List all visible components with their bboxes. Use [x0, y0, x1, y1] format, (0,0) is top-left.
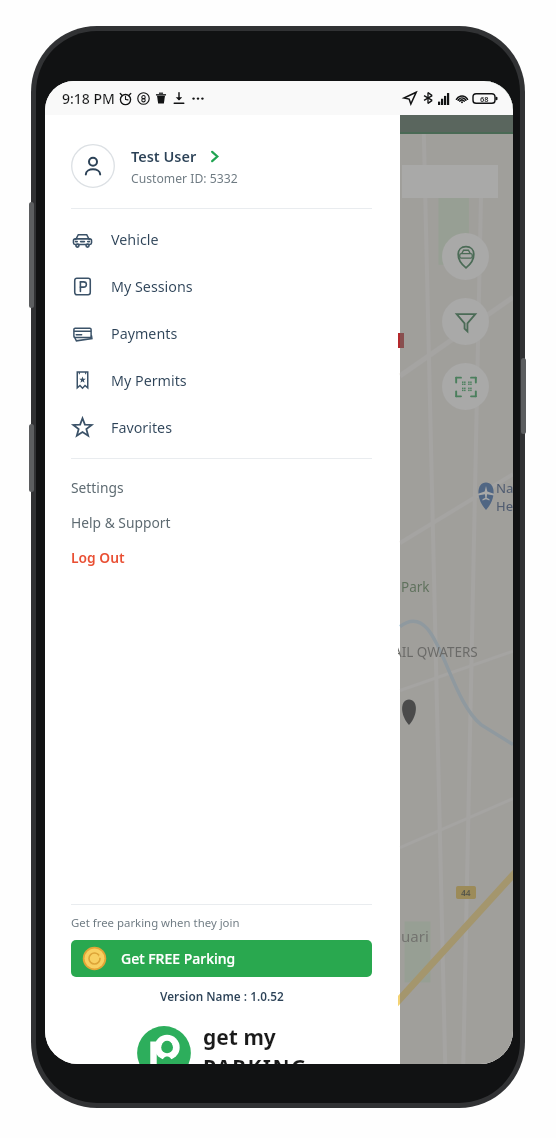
button[interactable]: Log Out [45, 540, 398, 575]
staticText: Customer ID: 5332 [131, 170, 238, 187]
button[interactable]: Vehicle [45, 216, 398, 263]
button[interactable]: Help & Support [45, 505, 398, 540]
staticText: 68 [480, 94, 489, 104]
button[interactable]: Settings [45, 470, 398, 505]
staticText: Vehicle [111, 230, 159, 249]
button[interactable]: My Sessions [45, 263, 398, 310]
staticText: 44 [461, 887, 471, 899]
staticText: Favorites [111, 418, 173, 437]
button[interactable]: Payments [45, 310, 398, 357]
button[interactable]: Nearby parking [442, 233, 489, 280]
staticText: Log Out [71, 548, 125, 567]
button[interactable]: Scan QR code [442, 363, 489, 410]
staticText: PARKING [203, 1053, 308, 1064]
staticText: 9:18 PM [62, 89, 115, 108]
staticText: My Sessions [111, 277, 193, 296]
staticText: get my [203, 1023, 276, 1052]
staticText: Na [496, 479, 513, 497]
staticText: Get free parking when they join [71, 915, 240, 931]
staticText: Get FREE Parking [121, 949, 236, 968]
button[interactable]: Get FREE Parking [71, 940, 372, 977]
staticText: Version Name : 1.0.52 [160, 988, 284, 1004]
button[interactable]: Filter [442, 298, 489, 345]
staticText: Park [401, 578, 430, 596]
staticText: uari [401, 926, 429, 946]
staticText: He [496, 497, 513, 515]
staticText: Help & Support [71, 513, 171, 532]
staticText: My Permits [111, 371, 187, 390]
button[interactable]: Test User [45, 141, 398, 191]
button[interactable]: My Permits [45, 357, 398, 404]
staticText: AIL QWATERS [393, 643, 478, 661]
button[interactable]: Favorites [45, 404, 398, 451]
staticText: Settings [71, 478, 124, 497]
staticText: Payments [111, 324, 178, 343]
staticText: Test User [131, 146, 197, 166]
